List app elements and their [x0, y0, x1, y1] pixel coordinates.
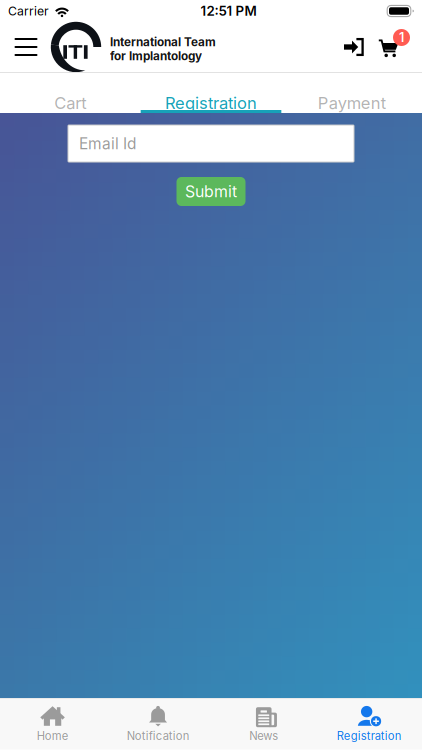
staticText: News [249, 729, 278, 743]
staticText: Carrier [8, 4, 49, 18]
button[interactable]: Home [0, 698, 105, 749]
staticText: 1 [399, 30, 404, 45]
button[interactable]: News [211, 698, 316, 749]
staticText: Registration [337, 729, 402, 743]
button[interactable]: Menu [9, 24, 43, 70]
staticText: Notification [127, 729, 190, 743]
button[interactable]: Cart, 1 item [375, 24, 413, 70]
button[interactable]: Registration [316, 698, 422, 749]
staticText: for Implantology [110, 49, 202, 63]
staticText: Home [37, 729, 69, 743]
staticText: Cart [54, 93, 86, 113]
staticText: Registration [165, 93, 257, 113]
button[interactable]: Sign in [337, 24, 371, 70]
button[interactable]: Payment [281, 73, 422, 113]
staticText: 12:51 PM [201, 3, 257, 19]
staticText: Submit [185, 182, 237, 201]
button[interactable]: Registration [141, 73, 281, 113]
button[interactable]: Submit [176, 177, 245, 206]
button[interactable]: Cart [0, 73, 141, 113]
button[interactable]: Notification [105, 698, 211, 749]
staticText: International Team [110, 35, 216, 49]
staticText: Payment [318, 93, 386, 113]
staticText: Email Id [79, 134, 136, 153]
